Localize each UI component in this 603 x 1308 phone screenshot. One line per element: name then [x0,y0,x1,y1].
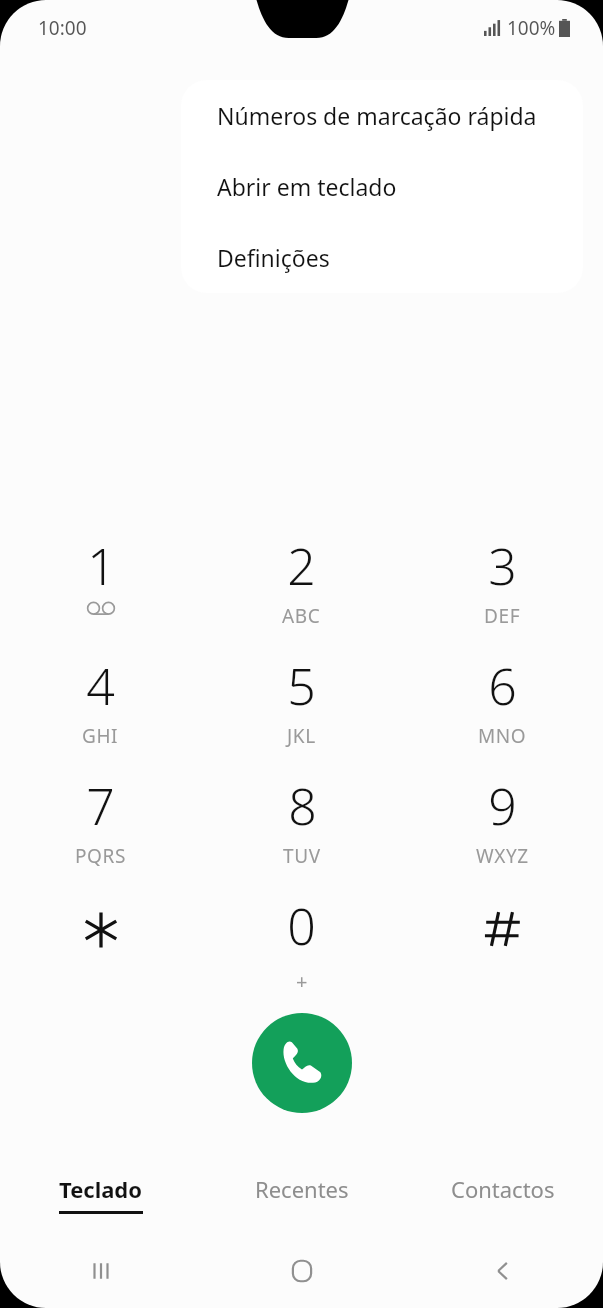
staticText: 100% [507,15,556,41]
staticText: + [296,968,308,995]
staticText: 10:00 [38,15,87,41]
button[interactable]: Recentes [201,1160,402,1222]
staticText: 6 [488,652,517,720]
button[interactable]: Back [402,1234,603,1308]
staticText: 4 [86,652,115,720]
button[interactable]: 7 [0,764,201,884]
staticText: PQRS [75,843,126,869]
staticText: Abrir em teclado [217,171,397,202]
button[interactable]: 4 [0,644,201,764]
staticText: DEF [484,603,521,629]
staticText: GHI [82,723,119,749]
button[interactable]: Recent apps [0,1234,201,1308]
staticText: 9 [488,772,517,840]
staticText: 0 [287,892,316,960]
staticText: Números de marcação rápida [217,100,537,131]
staticText: TUV [283,843,321,869]
staticText: Teclado [59,1174,143,1204]
button[interactable] [0,884,201,1004]
staticText: 8 [288,772,317,840]
staticText: 5 [287,652,316,720]
staticText: MNO [478,723,527,749]
button[interactable]: 1 [0,524,201,644]
button[interactable]: Números de marcação rápida [181,80,583,151]
button[interactable]: 6 [402,644,603,764]
staticText: WXYZ [476,843,529,869]
button[interactable]: Teclado [0,1160,201,1222]
button[interactable] [402,884,603,1004]
staticText: Contactos [451,1174,555,1204]
staticText: 1 [87,532,116,600]
button[interactable]: 2 [201,524,402,644]
button[interactable]: Home [201,1234,402,1308]
staticText: 3 [488,532,517,600]
button[interactable]: 5 [201,644,402,764]
button[interactable]: 3 [402,524,603,644]
button[interactable]: Abrir em teclado [181,151,583,222]
staticText: Recentes [255,1174,349,1204]
staticText: Definições [217,242,330,273]
button[interactable]: Definições [181,222,583,293]
button[interactable]: 9 [402,764,603,884]
staticText: 7 [86,772,115,840]
staticText: ABC [282,603,321,629]
button[interactable]: 8 [201,764,402,884]
staticText: JKL [287,723,316,749]
button[interactable]: 0 [201,884,402,1004]
button[interactable]: Call [252,1013,352,1113]
button[interactable]: Contactos [402,1160,603,1222]
staticText: 2 [287,532,316,600]
